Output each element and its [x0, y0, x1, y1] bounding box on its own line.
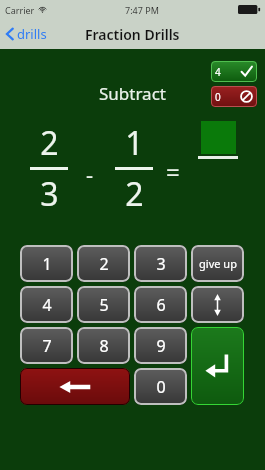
staticText: 1 — [42, 253, 52, 275]
staticText: 3 — [156, 253, 166, 275]
button[interactable]: Swap — [191, 286, 244, 323]
button[interactable]: 3 — [134, 245, 187, 282]
staticText: 2 — [125, 172, 144, 216]
staticText: 5 — [99, 294, 109, 316]
button[interactable]: drills — [0, 21, 55, 47]
staticText: 4 — [42, 294, 52, 316]
button[interactable]: 8 — [77, 327, 130, 364]
staticText: 2 — [40, 121, 59, 165]
staticText: 0 — [156, 376, 166, 398]
staticText: 4 — [215, 65, 221, 79]
staticText: Carrier — [5, 4, 35, 16]
staticText: 8 — [99, 335, 109, 357]
staticText: drills — [17, 25, 47, 43]
button[interactable]: 7 — [20, 327, 73, 364]
button[interactable]: Enter — [191, 327, 244, 405]
button[interactable]: 4 — [20, 286, 73, 323]
staticText: = — [166, 155, 180, 188]
staticText: Subtract — [99, 82, 166, 105]
staticText: 7:47 PM — [125, 4, 159, 16]
button[interactable]: 5 — [77, 286, 130, 323]
button[interactable]: 4 — [211, 61, 257, 82]
staticText: Fraction Drills — [85, 25, 180, 44]
staticText: give up — [199, 256, 237, 271]
staticText: 2 — [99, 253, 109, 275]
button[interactable]: give up — [191, 245, 244, 282]
button[interactable]: 2 — [77, 245, 130, 282]
staticText: 6 — [156, 294, 166, 316]
button[interactable]: 6 — [134, 286, 187, 323]
staticText: 0 — [215, 90, 221, 104]
button[interactable]: 1 — [20, 245, 73, 282]
staticText: 3 — [40, 172, 59, 216]
button[interactable]: 0 — [211, 86, 257, 107]
staticText: 7 — [42, 335, 52, 357]
button[interactable]: 9 — [134, 327, 187, 364]
button[interactable]: Backspace — [20, 368, 130, 405]
button[interactable]: 0 — [134, 368, 187, 405]
staticText: 1 — [125, 121, 144, 165]
staticText: - — [86, 159, 94, 189]
staticText: 9 — [156, 335, 166, 357]
